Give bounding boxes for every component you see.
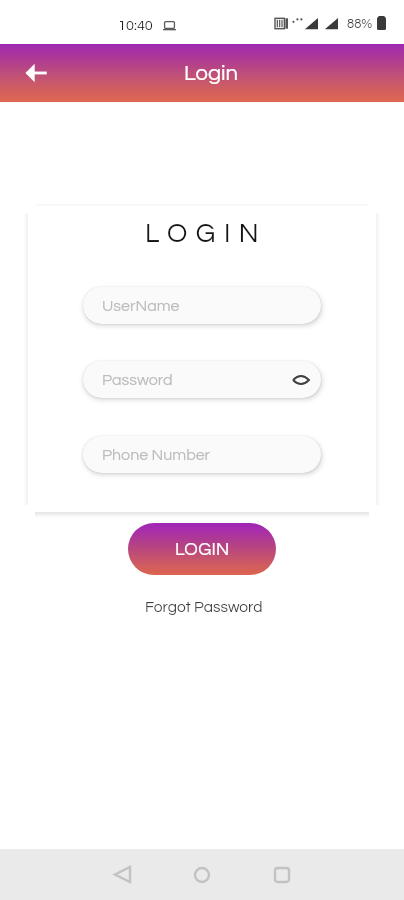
button[interactable]: Forgot Password bbox=[145, 599, 263, 615]
staticText: LOGIN bbox=[175, 540, 230, 559]
staticText: Login bbox=[184, 62, 238, 85]
button[interactable]: UserName bbox=[83, 287, 321, 324]
staticText: Phone Number bbox=[102, 447, 211, 463]
staticText: UserName bbox=[102, 298, 180, 314]
button[interactable]: Toggle password visibility bbox=[290, 369, 312, 391]
staticText: 88% bbox=[347, 17, 373, 30]
button[interactable]: Back bbox=[94, 849, 150, 900]
button[interactable]: LOGIN bbox=[128, 523, 276, 575]
staticText: LOGIN bbox=[145, 220, 268, 248]
staticText: 10:40 bbox=[118, 18, 153, 33]
button[interactable]: Password bbox=[83, 361, 321, 398]
button[interactable]: Back bbox=[19, 56, 53, 90]
button[interactable]: Home bbox=[174, 849, 230, 900]
staticText: Password bbox=[102, 372, 173, 388]
button[interactable]: Phone Number bbox=[83, 436, 321, 473]
button[interactable]: Recent apps bbox=[254, 849, 310, 900]
